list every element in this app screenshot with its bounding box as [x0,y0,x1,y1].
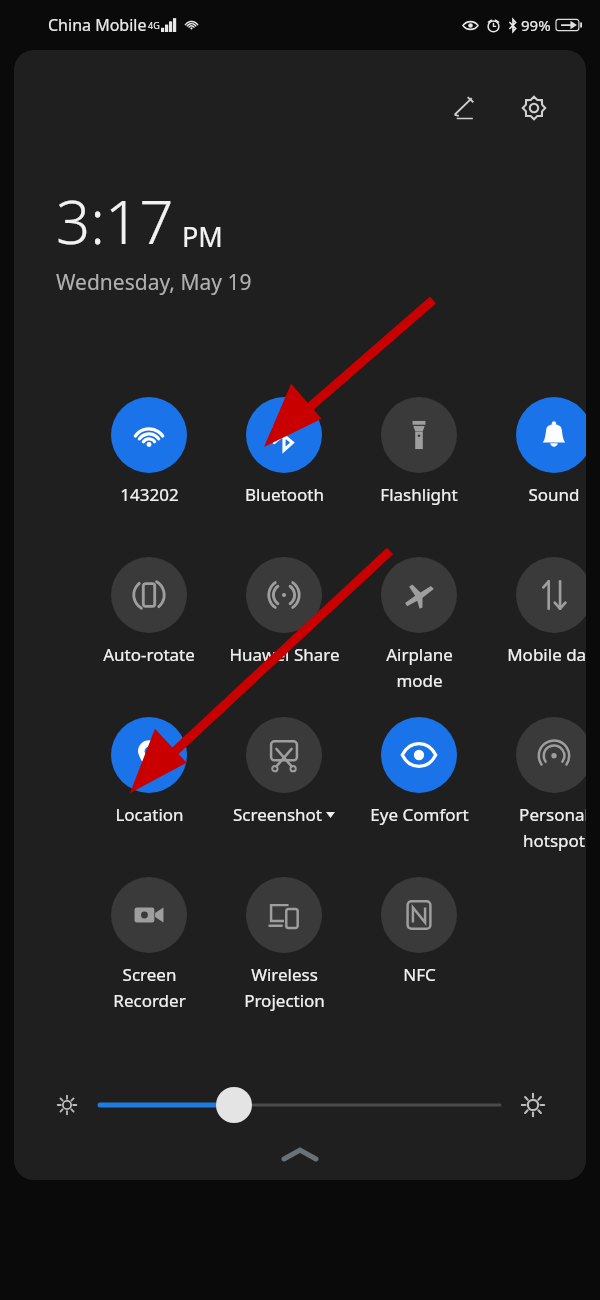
button[interactable]: Bluetooth [218,397,350,506]
button[interactable]: Screenshot [218,717,350,826]
button[interactable]: Collapse [280,1146,320,1162]
staticText: Mobile data [507,643,586,666]
button[interactable]: Eye Comfort [353,717,485,826]
staticText: 99% [521,15,551,35]
staticText: Huawei Share [229,643,340,666]
button[interactable]: Sound [488,397,586,506]
staticText: PM [182,218,223,255]
button[interactable]: Auto-rotate [83,557,215,666]
button[interactable]: 143202 [83,397,215,506]
button[interactable]: NFC [353,877,485,986]
button[interactable]: Edit [442,86,486,130]
staticText: Wednesday, May 19 [56,268,252,297]
button[interactable]: Brightness [100,1082,500,1128]
staticText: Screenshot [233,803,322,826]
staticText: Airplane mode [386,643,453,692]
staticText: Wireless Projection [244,963,325,1012]
button[interactable]: Lower brightness [44,1082,90,1128]
staticText: Eye Comfort [370,803,469,826]
button[interactable]: Flashlight [353,397,485,506]
staticText: Sound [528,483,580,506]
button[interactable]: Settings [512,86,556,130]
button[interactable]: Personal hotspot [488,717,586,852]
staticText: Flashlight [380,483,458,506]
button[interactable]: Huawei Share [218,557,350,666]
staticText: 4G [148,19,160,31]
staticText: Personal hotspot [519,803,586,852]
staticText: Auto-rotate [103,643,195,666]
button[interactable]: Raise brightness [510,1082,556,1128]
button[interactable]: Screen Recorder [83,877,215,1012]
staticText: NFC [403,963,436,986]
button[interactable]: Airplane mode [353,557,485,692]
staticText: 143202 [120,483,179,506]
staticText: China Mobile [48,14,147,36]
button[interactable]: Mobile data [488,557,586,666]
staticText: Screen Recorder [113,963,186,1012]
staticText: Location [115,803,184,826]
staticText: Bluetooth [245,483,324,506]
staticText: 3:17 [56,180,174,262]
button[interactable]: Wireless Projection [218,877,350,1012]
button[interactable]: Location [83,717,215,826]
